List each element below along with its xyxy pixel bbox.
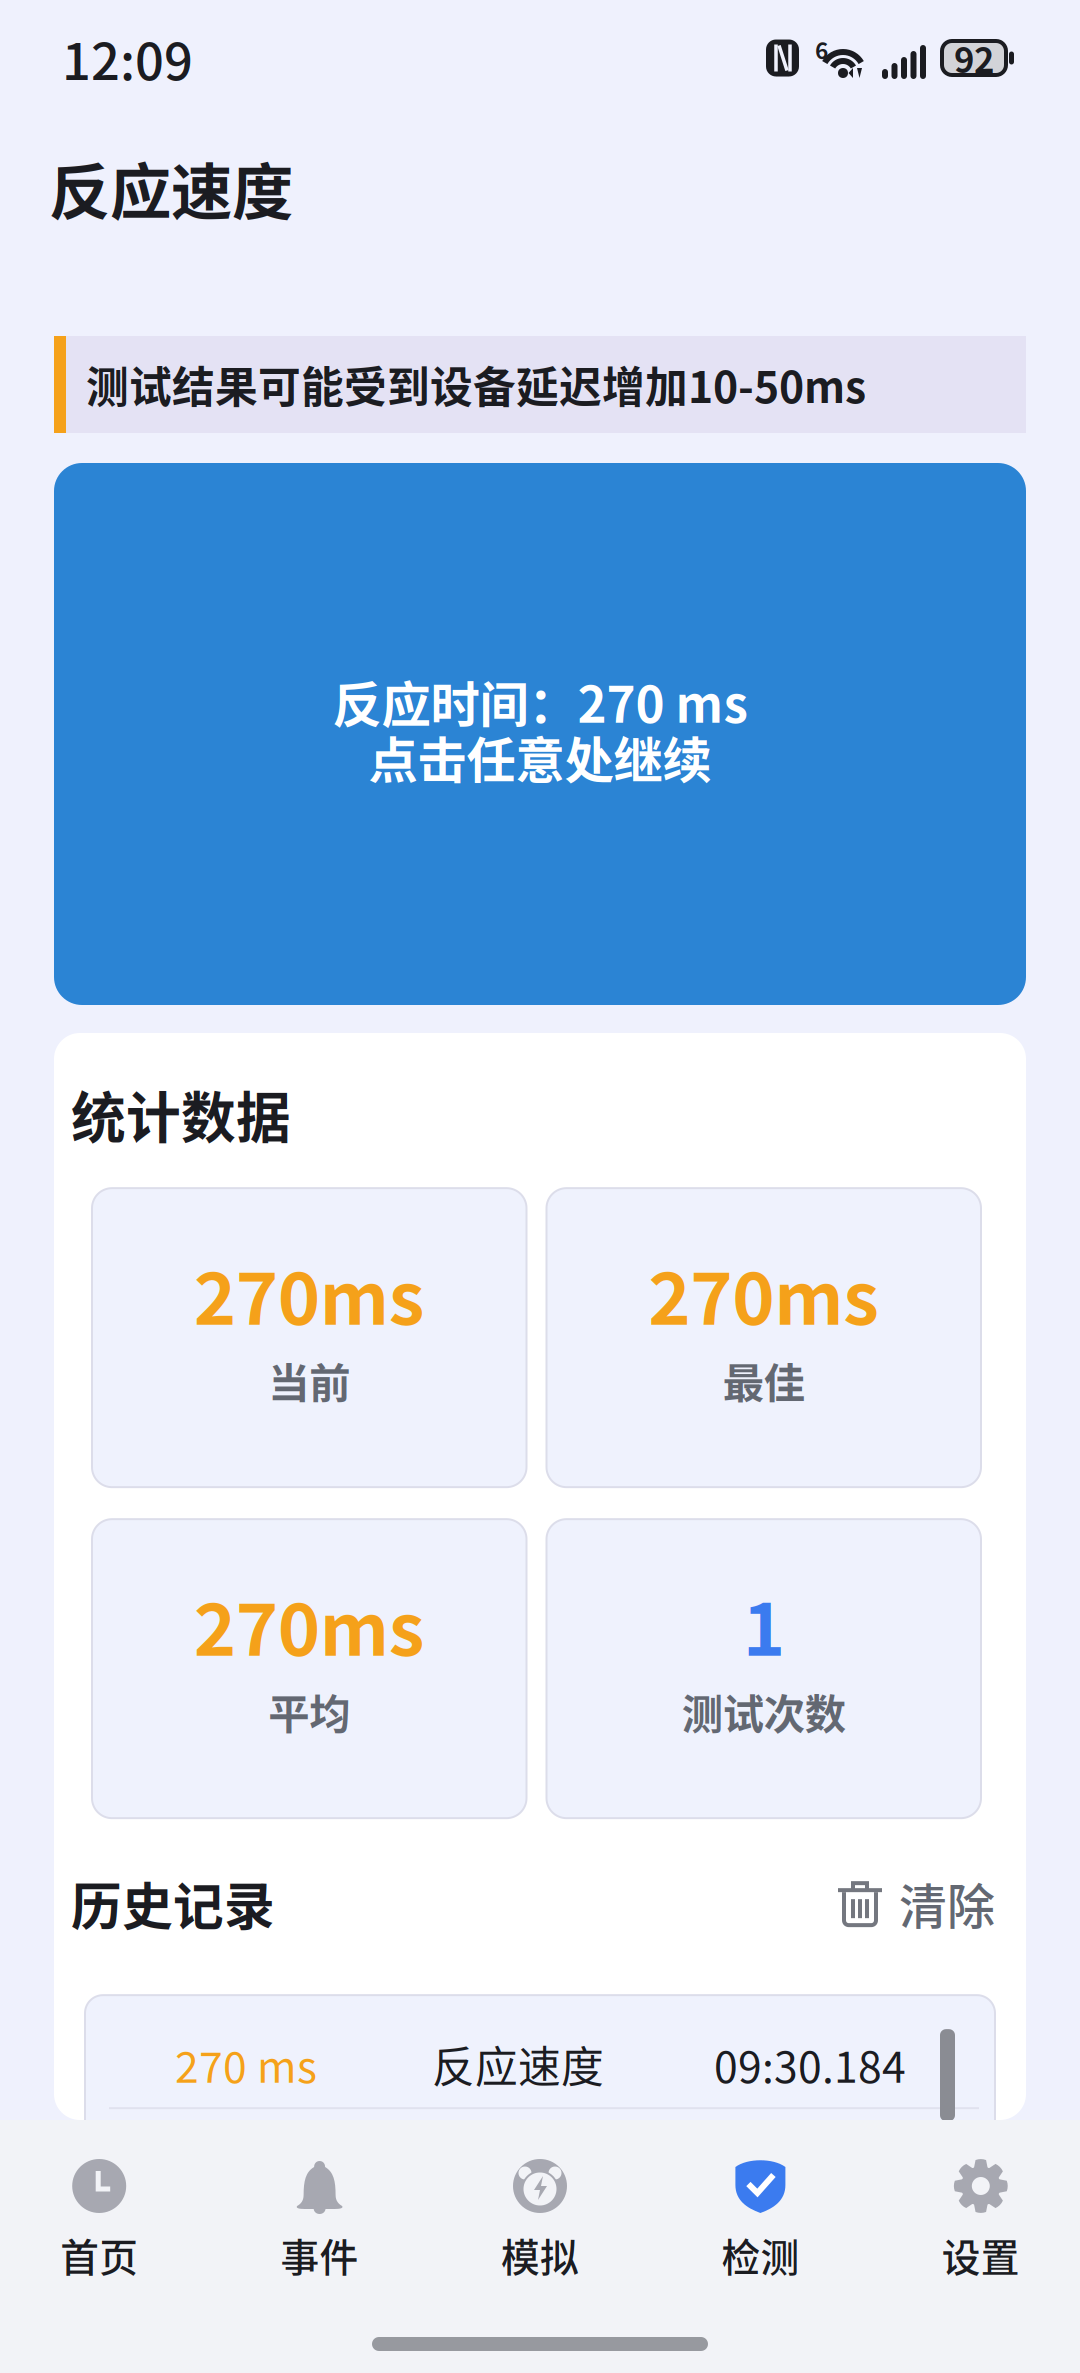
button[interactable]: 检测 [650,2151,871,2291]
staticText: 12:09 [62,21,193,95]
staticText: 1 [743,1572,785,1676]
staticText: 清除 [899,1868,995,1938]
staticText: 反应速度 [49,144,293,232]
button[interactable]: 模拟 [430,2151,650,2291]
staticText: 270ms [194,1572,425,1676]
staticText: 设置 [942,2227,1020,2283]
staticText: 测试结果可能受到设备延迟增加10-50ms [86,354,866,415]
staticText: 当前 [268,1350,350,1410]
button[interactable]: 事件 [209,2151,430,2291]
button[interactable]: 设置 [871,2151,1080,2291]
staticText: 270 ms [175,2133,317,2195]
button[interactable]: 反应时间：270 ms [54,463,1026,1005]
staticText: 92 [954,33,994,83]
staticText: 270ms [648,1241,879,1345]
staticText: 09:30.184 [714,2033,906,2095]
staticText: 检测 [721,2227,799,2283]
staticText: 历史记录 [71,1866,275,1940]
staticText: 270 ms [175,2033,317,2095]
button[interactable]: 首页 [0,2151,209,2291]
staticText: 首页 [60,2227,138,2283]
staticText: 反应速度 [432,2033,604,2095]
staticText: 测试次数 [682,1681,846,1741]
staticText: 270ms [194,1241,425,1345]
staticText: 模拟 [501,2227,579,2283]
staticText: 点击任意处继续 [368,721,711,792]
staticText: 最佳 [723,1350,805,1410]
staticText: 反应时间：270 ms [332,666,747,737]
staticText: 事件 [281,2227,359,2283]
button[interactable]: 清除 [836,1868,995,1938]
staticText: 6 [815,33,828,66]
staticText: 统计数据 [71,1074,291,1153]
staticText: 平均 [268,1681,350,1741]
